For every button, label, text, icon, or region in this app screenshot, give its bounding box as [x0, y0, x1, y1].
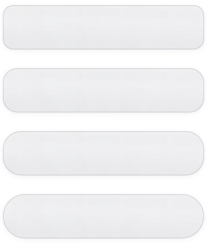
- button[interactable]: Item 2: [3, 68, 204, 112]
- button[interactable]: Item 4: [3, 194, 204, 238]
- button[interactable]: Item 1: [3, 5, 204, 49]
- button[interactable]: Item 3: [3, 131, 204, 175]
